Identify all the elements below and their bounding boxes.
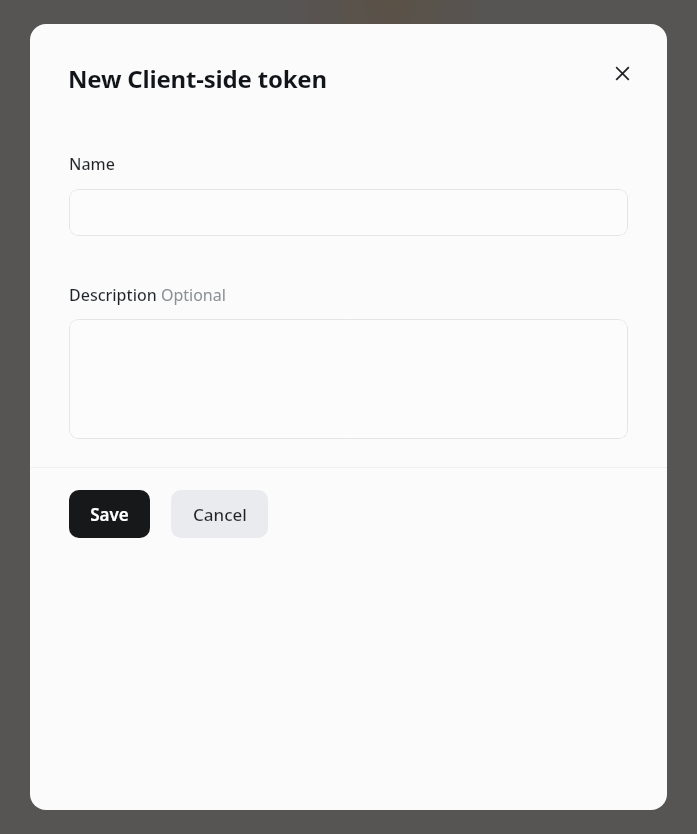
button[interactable]: Name input xyxy=(69,189,628,236)
button[interactable]: Cancel xyxy=(171,490,268,538)
button[interactable]: Save xyxy=(69,490,150,538)
button[interactable]: Description input xyxy=(69,319,628,439)
staticText: New Client-side token xyxy=(68,62,327,95)
button[interactable]: Close xyxy=(601,52,643,94)
staticText: Description Optional xyxy=(69,284,226,306)
staticText: Name xyxy=(69,153,115,175)
staticText: Save xyxy=(90,503,129,526)
staticText: Cancel xyxy=(193,503,247,526)
